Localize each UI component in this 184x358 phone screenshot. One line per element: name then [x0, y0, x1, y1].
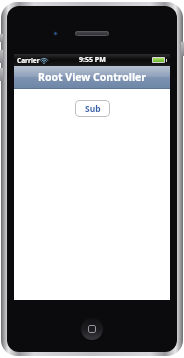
staticText: Carrier [17, 56, 40, 65]
staticText: Root View Controller [38, 70, 146, 84]
button[interactable]: Home [81, 318, 103, 340]
staticText: Sub [85, 103, 101, 115]
staticText: 9:55 PM [79, 55, 106, 65]
button[interactable]: Sub [75, 100, 110, 117]
